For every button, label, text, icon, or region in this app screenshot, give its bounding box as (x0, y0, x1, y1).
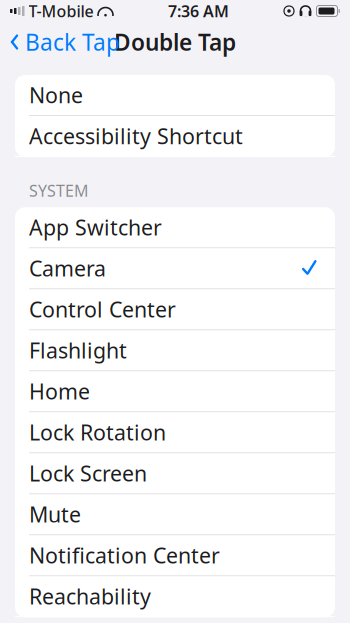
button[interactable]: Mute (15, 494, 335, 535)
staticText: Lock Screen (29, 459, 147, 487)
staticText: SYSTEM (29, 180, 89, 201)
staticText: Back Tap (25, 27, 120, 57)
staticText: 7:36 AM (168, 0, 229, 22)
button[interactable]: Control Center (15, 289, 335, 330)
button[interactable]: None (15, 75, 335, 116)
button[interactable]: Accessibility Shortcut (15, 116, 335, 157)
staticText: Home (29, 377, 90, 405)
staticText: App Switcher (29, 213, 162, 241)
staticText: Camera (29, 254, 106, 282)
button[interactable]: App Switcher (15, 207, 335, 248)
staticText: Double Tap (114, 27, 236, 57)
button[interactable]: Flashlight (15, 330, 335, 371)
button[interactable]: Home (15, 371, 335, 412)
staticText: Lock Rotation (29, 418, 166, 446)
staticText: None (29, 81, 83, 109)
staticText: Accessibility Shortcut (29, 122, 243, 150)
button[interactable]: Reachability (15, 576, 335, 617)
staticText: Notification Center (29, 541, 220, 569)
staticText: Flashlight (29, 336, 127, 364)
staticText: T-Mobile (28, 0, 93, 22)
button[interactable]: Camera (15, 248, 335, 289)
staticText: Reachability (29, 582, 151, 610)
staticText: Mute (29, 500, 81, 528)
button[interactable]: Notification Center (15, 535, 335, 576)
staticText: Control Center (29, 295, 176, 323)
button[interactable]: Lock Screen (15, 453, 335, 494)
button[interactable]: Back Tap (0, 21, 126, 63)
button[interactable]: Lock Rotation (15, 412, 335, 453)
